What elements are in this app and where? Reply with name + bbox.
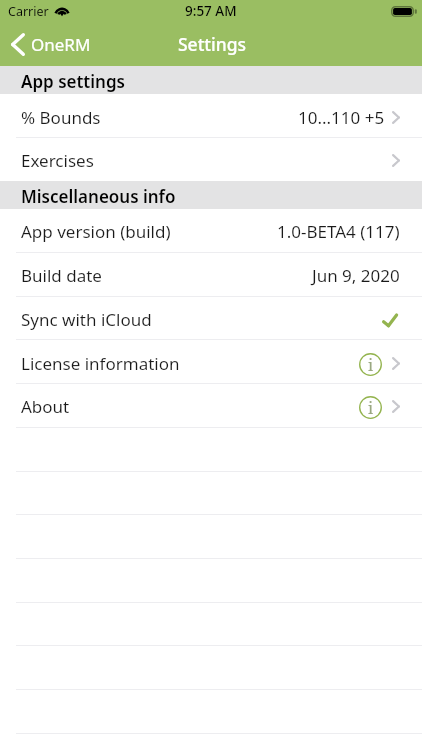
staticText: i [368,354,374,376]
button[interactable]: Sync with iCloud [0,296,422,340]
staticText: 1.0-BETA4 (117) [277,220,400,243]
button[interactable]: Exercises [0,137,422,181]
staticText: Miscellaneous info [21,185,176,208]
staticText: % Bounds [21,106,101,129]
staticText: Jun 9, 2020 [312,264,400,287]
staticText: App settings [21,70,125,93]
staticText: License information [21,352,180,375]
staticText: 10...110 +5 [298,106,385,129]
staticText: Build date [21,264,102,287]
staticText: OneRM [31,33,91,56]
button[interactable]: License information [0,340,422,384]
staticText: 9:57 AM [185,2,237,20]
button[interactable]: About [0,383,422,427]
button[interactable]: % Bounds [0,94,422,138]
staticText: Settings [178,32,247,56]
button[interactable]: Back to OneRM [0,29,101,60]
button[interactable]: App version (build) [0,208,422,252]
button[interactable]: Build date [0,252,422,296]
staticText: Sync with iCloud [21,308,152,331]
staticText: App version (build) [21,220,171,243]
staticText: Carrier [8,3,49,20]
staticText: i [368,397,374,419]
staticText: About [21,395,70,418]
staticText: Exercises [21,149,94,172]
